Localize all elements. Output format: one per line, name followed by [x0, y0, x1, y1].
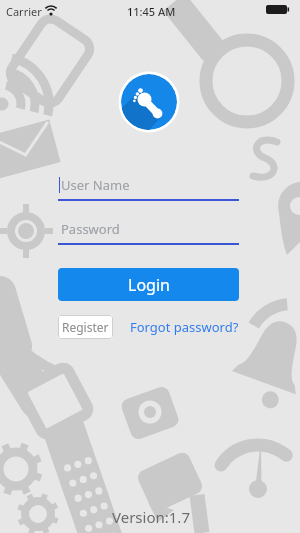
staticText: Password	[61, 220, 120, 238]
staticText: Version:1.7	[112, 507, 190, 527]
staticText: Register	[62, 319, 109, 335]
staticText: 11:45 AM	[127, 4, 176, 19]
button[interactable]: Password	[58, 216, 240, 246]
button[interactable]: Forgot password?	[130, 318, 239, 336]
staticText: Forgot password?	[130, 318, 239, 336]
staticText: User Name	[61, 176, 130, 194]
staticText: Carrier	[6, 4, 42, 19]
staticText: Login	[128, 274, 170, 296]
button[interactable]: User Name	[58, 172, 240, 202]
button[interactable]: Register	[58, 315, 113, 339]
button[interactable]: Login	[58, 268, 239, 301]
